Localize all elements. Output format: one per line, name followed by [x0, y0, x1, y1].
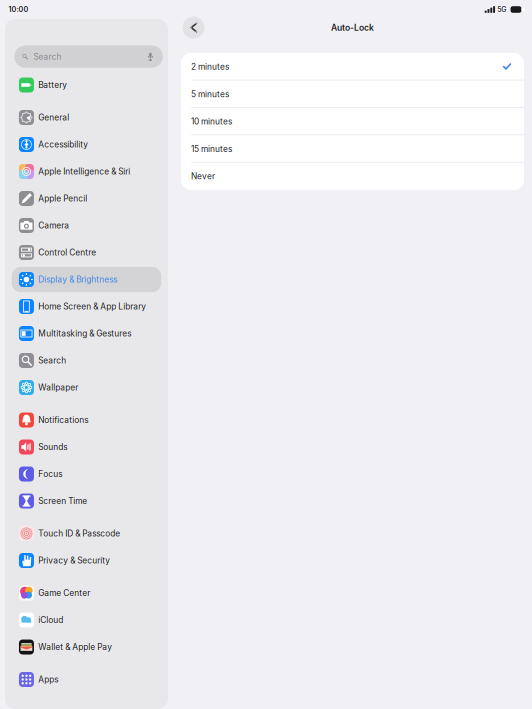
button[interactable]: Wallet & Apple Pay — [12, 634, 161, 660]
staticText: Home Screen & App Library — [38, 301, 146, 312]
staticText: 5 minutes — [191, 89, 229, 99]
button[interactable]: Never — [181, 163, 524, 190]
button[interactable]: 10 minutes — [181, 108, 524, 135]
staticText: Wallet & Apple Pay — [38, 642, 112, 652]
staticText: Auto-Lock — [331, 22, 374, 33]
staticText: Camera — [38, 220, 69, 231]
staticText: 5G — [497, 5, 506, 14]
staticText: 2 minutes — [191, 62, 229, 72]
staticText: Never — [191, 171, 215, 181]
button[interactable]: Home Screen & App Library — [12, 294, 161, 319]
button[interactable]: Control Centre — [12, 240, 161, 265]
button[interactable]: Multitasking & Gestures — [12, 321, 161, 346]
staticText: Display & Brightness — [38, 274, 117, 285]
staticText: General — [38, 112, 69, 123]
button[interactable]: 2 minutes — [181, 53, 524, 80]
button[interactable]: 5 minutes — [181, 80, 524, 108]
staticText: Game Center — [38, 588, 90, 598]
staticText: Control Centre — [38, 247, 96, 258]
button[interactable]: Focus — [12, 461, 161, 487]
staticText: Accessibility — [38, 139, 88, 150]
button[interactable]: Touch ID & Passcode — [12, 521, 161, 546]
staticText: Search — [38, 355, 66, 366]
staticText: Screen Time — [38, 496, 87, 506]
staticText: 15 minutes — [191, 144, 232, 154]
staticText: Wallpaper — [38, 382, 78, 393]
staticText: Focus — [38, 469, 62, 479]
button[interactable]: Privacy & Security — [12, 548, 161, 573]
staticText: 10 minutes — [191, 116, 232, 127]
staticText: Search — [33, 52, 61, 62]
button[interactable]: Apps — [12, 667, 161, 692]
button[interactable]: Back — [182, 17, 204, 39]
staticText: Multitasking & Gestures — [38, 328, 131, 339]
button[interactable]: Apple Pencil — [12, 186, 161, 211]
button[interactable]: Accessibility — [12, 132, 161, 157]
button[interactable]: Game Center — [12, 580, 161, 606]
button[interactable]: Camera — [12, 213, 161, 238]
staticText: iCloud — [38, 615, 63, 625]
button[interactable]: 15 minutes — [181, 135, 524, 163]
button[interactable]: iCloud — [12, 607, 161, 633]
button[interactable]: General — [12, 105, 161, 130]
button[interactable]: Notifications — [12, 407, 161, 433]
button[interactable]: Display & Brightness — [12, 267, 161, 292]
staticText: Apple Intelligence & Siri — [38, 166, 130, 177]
button[interactable]: Screen Time — [12, 488, 161, 514]
button[interactable]: Battery — [12, 72, 161, 98]
staticText: Apple Pencil — [38, 193, 87, 204]
staticText: Sounds — [38, 442, 67, 452]
button[interactable]: Sounds — [12, 434, 161, 460]
staticText: Notifications — [38, 415, 88, 425]
staticText: 10:00 — [8, 5, 28, 14]
staticText: Apps — [38, 674, 58, 685]
button[interactable]: Search — [12, 348, 161, 373]
staticText: Battery — [38, 80, 67, 90]
staticText: Touch ID & Passcode — [38, 528, 120, 539]
staticText: Privacy & Security — [38, 555, 110, 566]
button[interactable]: Wallpaper — [12, 375, 161, 400]
button[interactable]: Apple Intelligence & Siri — [12, 159, 161, 184]
